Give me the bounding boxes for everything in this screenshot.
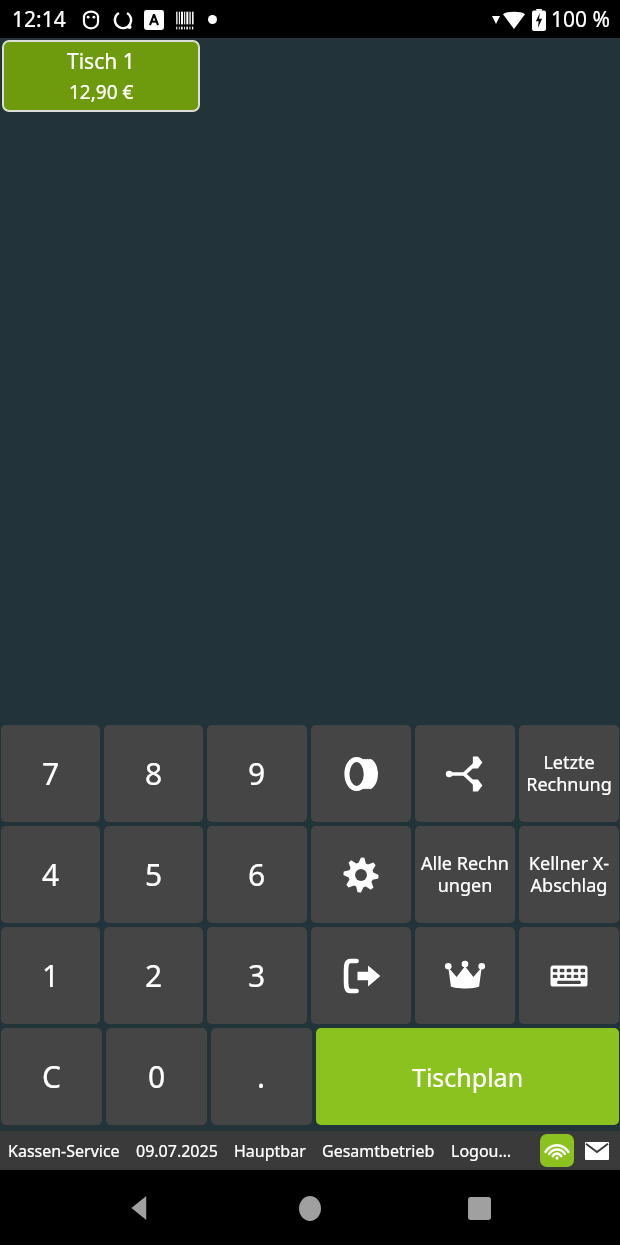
button[interactable]: Chef [415, 927, 515, 1024]
button[interactable]: Hauptbar [234, 1140, 306, 1162]
button[interactable]: 2 [104, 927, 203, 1024]
staticText: Logou… [451, 1140, 512, 1162]
button[interactable]: Alle Rechnungen [415, 826, 515, 923]
button[interactable]: Startbildschirm [282, 1180, 338, 1236]
button[interactable]: 3 [207, 927, 307, 1024]
button[interactable]: 9 [207, 725, 307, 822]
staticText: Kassen-Service [8, 1140, 120, 1162]
button[interactable]: 7 [1, 725, 100, 822]
staticText: 2 [145, 955, 163, 996]
staticText: C [42, 1056, 61, 1097]
button[interactable]: 8 [104, 725, 203, 822]
button[interactable]: 4 [1, 826, 100, 923]
staticText: Tisch 1 [67, 47, 135, 76]
button[interactable]: 1 [1, 927, 100, 1024]
button[interactable]: Gesamtbetrieb [322, 1140, 435, 1162]
staticText: 1 [42, 955, 60, 996]
staticText: 100 % [551, 5, 610, 34]
staticText: 12:14 [12, 5, 66, 34]
button[interactable]: Abmelden [311, 927, 411, 1024]
staticText: 12,90 € [69, 79, 134, 105]
button[interactable]: Nachrichten [580, 1134, 614, 1167]
button[interactable]: Logou… [451, 1140, 512, 1162]
button[interactable]: Kellner X-Abschlag [519, 826, 619, 923]
button[interactable]: Tisch 1 [2, 40, 200, 112]
staticText: Kellner X-Abschlag [522, 851, 616, 898]
staticText: 3 [248, 955, 266, 996]
staticText: . [257, 1056, 266, 1097]
button[interactable]: Zurück [113, 1180, 169, 1236]
button[interactable]: Letzte Rechnung [519, 725, 619, 822]
button[interactable]: Teilen [415, 725, 515, 822]
button[interactable]: C [1, 1028, 102, 1125]
button[interactable]: Münzen [311, 725, 411, 822]
button[interactable]: Tastatur [519, 927, 619, 1024]
button[interactable]: Einstellungen [311, 826, 411, 923]
staticText: Alle Rechnungen [418, 851, 512, 898]
staticText: 0 [148, 1056, 166, 1097]
button[interactable]: Kassen-Service [8, 1140, 120, 1162]
staticText: Gesamtbetrieb [322, 1140, 435, 1162]
staticText: Letzte Rechnung [522, 750, 616, 797]
staticText: 6 [248, 854, 266, 895]
staticText: 8 [145, 753, 163, 794]
button[interactable]: . [211, 1028, 312, 1125]
button[interactable]: 0 [106, 1028, 207, 1125]
button[interactable]: 09.07.2025 [136, 1140, 218, 1162]
staticText: 7 [42, 753, 60, 794]
button[interactable]: Übersicht [451, 1180, 507, 1236]
button[interactable]: WLAN [540, 1134, 574, 1167]
staticText: Tischplan [412, 1060, 524, 1094]
button[interactable]: 5 [104, 826, 203, 923]
staticText: 4 [42, 854, 60, 895]
button[interactable]: 6 [207, 826, 307, 923]
staticText: 09.07.2025 [136, 1140, 218, 1162]
staticText: 5 [145, 854, 163, 895]
staticText: 9 [248, 753, 266, 794]
staticText: Hauptbar [234, 1140, 306, 1162]
button[interactable]: Tischplan [316, 1028, 619, 1125]
